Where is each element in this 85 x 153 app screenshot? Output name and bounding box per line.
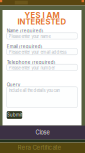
staticText: Close: [35, 129, 49, 136]
staticText: YES I AM: [24, 10, 59, 20]
staticText: Submit: [7, 112, 22, 118]
staticText: Rera Certificate: [17, 144, 61, 151]
staticText: Telephone (required): [7, 60, 56, 65]
button[interactable]: Submit: [7, 111, 22, 119]
button[interactable]: Close: [0, 126, 85, 139]
staticText: Email (required): [7, 44, 43, 49]
staticText: Name (required): [7, 28, 44, 33]
staticText: Please enter your name: [9, 34, 51, 39]
staticText: Include all the details you can: [9, 88, 60, 93]
staticText: Please enter your number: [9, 65, 56, 70]
staticText: INTERESTED: [17, 17, 66, 26]
staticText: Query: [7, 82, 20, 87]
staticText: Please enter your email address: [9, 50, 67, 55]
